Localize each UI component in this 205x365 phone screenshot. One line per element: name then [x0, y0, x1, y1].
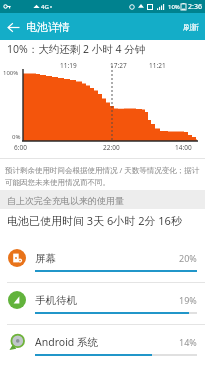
staticText: 手机待机	[35, 294, 77, 307]
staticText: 4G	[41, 3, 49, 11]
button[interactable]: 手机待机	[0, 282, 205, 324]
staticText: 可能因您未来使用情况而不同。	[5, 178, 110, 187]
button[interactable]: Back	[0, 14, 26, 40]
staticText: 刷新	[183, 22, 199, 32]
staticText: 19%	[179, 294, 197, 306]
button[interactable]: 屏幕	[0, 240, 205, 282]
staticText: 6:00	[14, 143, 27, 152]
staticText: 10%	[168, 3, 180, 11]
staticText: 屏幕	[35, 252, 56, 265]
staticText: 14%	[179, 336, 197, 348]
staticText: 电池详情	[26, 20, 70, 34]
staticText: 自上次完全充电以来的使用量	[7, 195, 124, 206]
staticText: 17:27	[110, 61, 127, 70]
staticText: 预计剩余使用时间会根据使用情况 / 天数等情况变化；据计	[5, 165, 200, 175]
staticText: 22:00	[103, 143, 120, 152]
staticText: 11:19	[60, 61, 77, 70]
staticText: 14:00	[175, 143, 192, 152]
staticText: 20%	[179, 252, 197, 264]
staticText: 0%	[12, 133, 21, 141]
button[interactable]: 刷新	[177, 17, 205, 37]
staticText: 电池已使用时间 3天 6小时 2分 16秒	[7, 213, 182, 228]
staticText: 2:36	[188, 2, 202, 12]
staticText: 11:21	[149, 61, 166, 70]
staticText: 10%：大约还剩 2 小时 4 分钟	[7, 42, 146, 56]
staticText: 100%	[3, 69, 19, 77]
button[interactable]: Android 系统	[0, 324, 205, 365]
staticText: Android 系统	[35, 335, 99, 349]
